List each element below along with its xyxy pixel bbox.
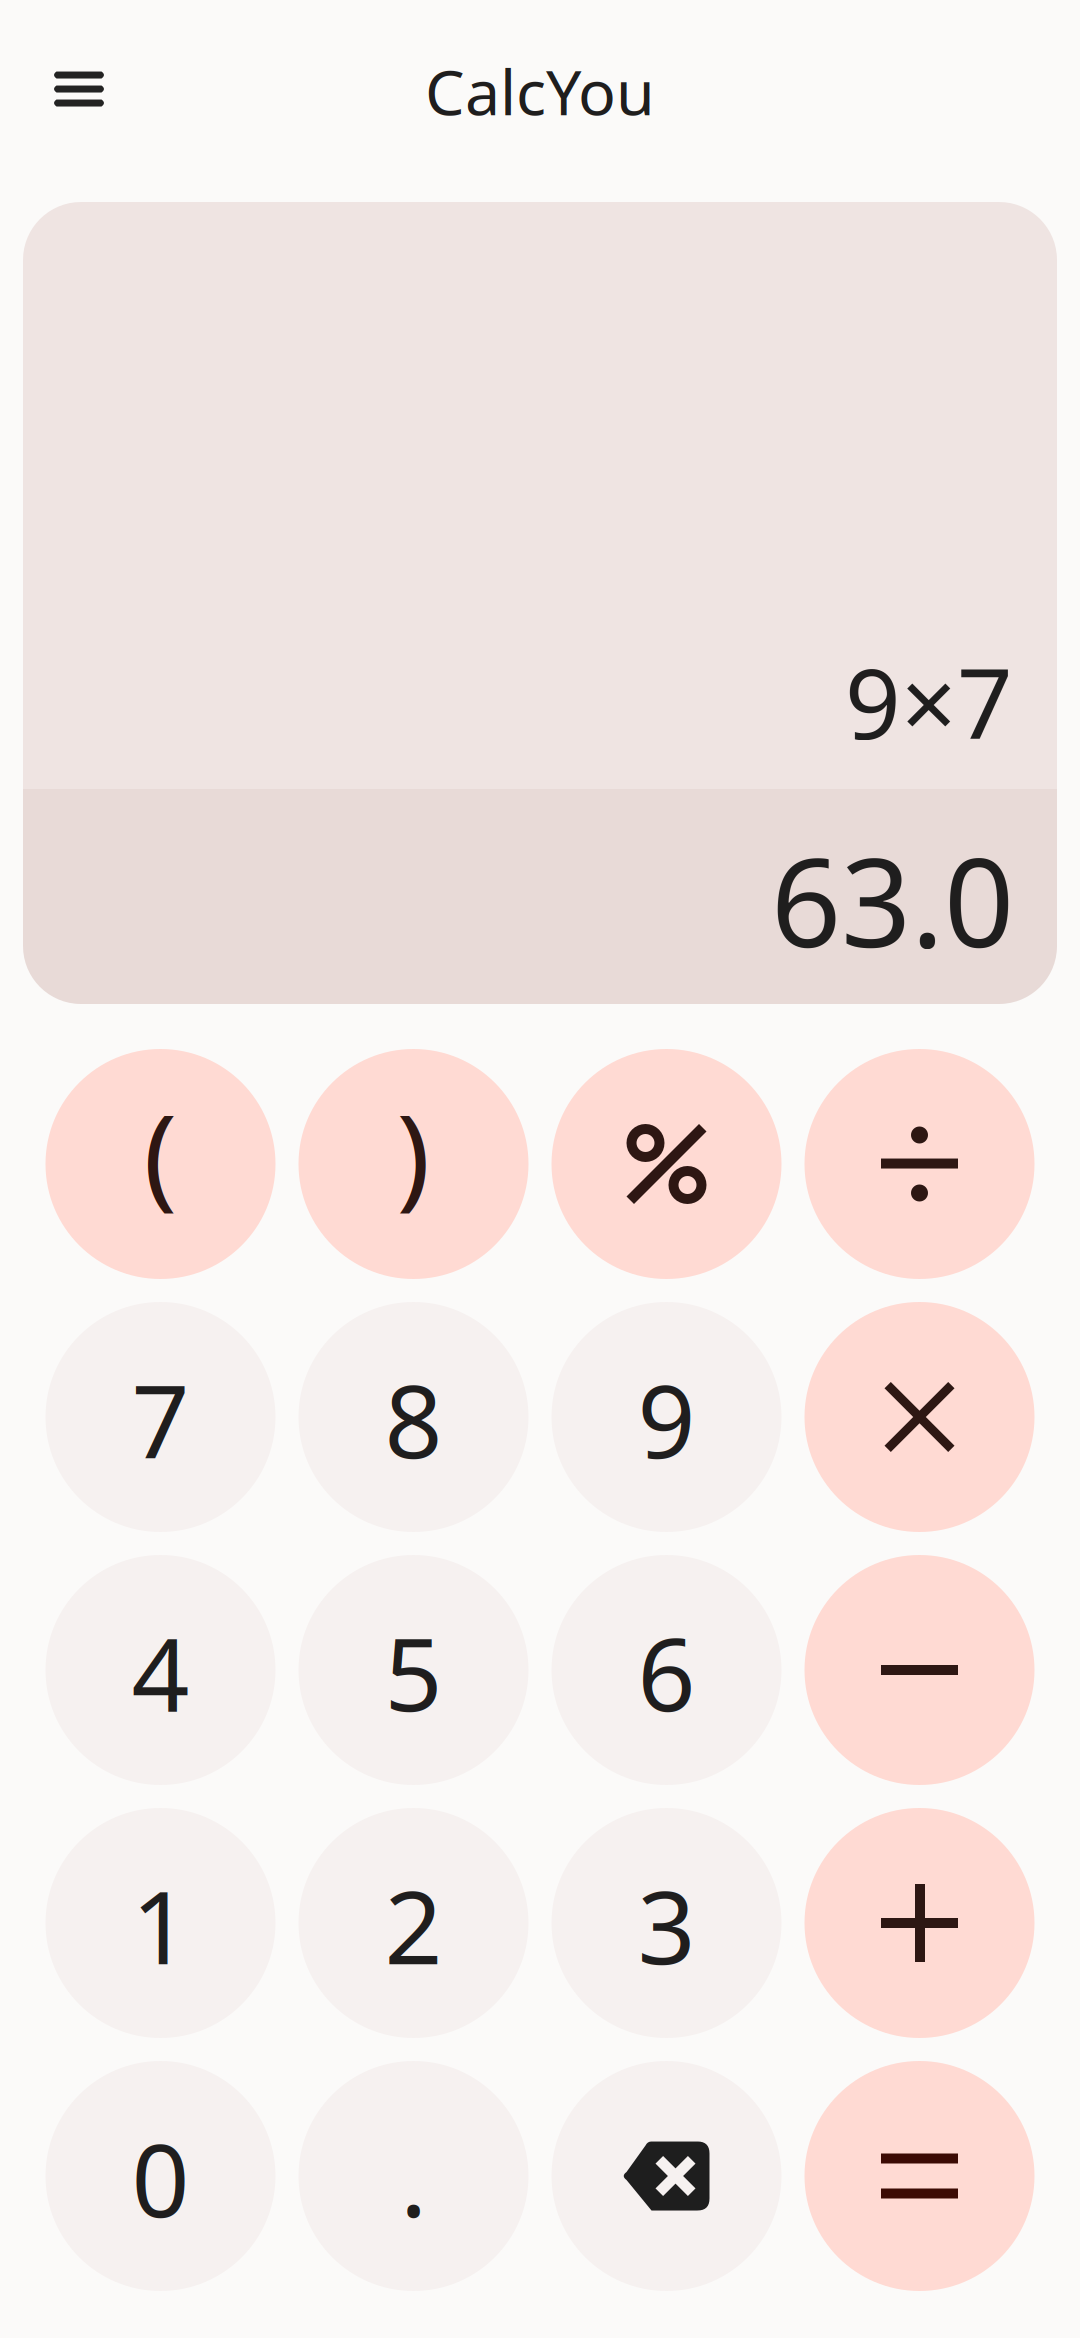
- button[interactable]: 5: [298, 1555, 528, 1785]
- staticText: 0: [131, 2111, 189, 2245]
- staticText: 8: [384, 1352, 442, 1486]
- button[interactable]: Close parenthesis: [298, 1049, 528, 1279]
- staticText: (: [143, 1078, 177, 1226]
- button[interactable]: Divide: [804, 1049, 1034, 1279]
- button[interactable]: 7: [45, 1302, 275, 1532]
- button[interactable]: Equals: [804, 2061, 1034, 2291]
- button[interactable]: 8: [298, 1302, 528, 1532]
- staticText: 63.0: [771, 818, 1014, 981]
- staticText: 5: [384, 1605, 442, 1739]
- staticText: CalcYou: [425, 49, 655, 133]
- button[interactable]: Open parenthesis: [45, 1049, 275, 1279]
- button[interactable]: 2: [298, 1808, 528, 2038]
- button[interactable]: Add: [804, 1808, 1034, 2038]
- staticText: 9: [637, 1352, 695, 1486]
- button[interactable]: 4: [45, 1555, 275, 1785]
- button[interactable]: 6: [551, 1555, 781, 1785]
- staticText: 7: [131, 1352, 189, 1486]
- button[interactable]: 1: [45, 1808, 275, 2038]
- button[interactable]: Backspace: [551, 2061, 781, 2291]
- button[interactable]: 0: [45, 2061, 275, 2291]
- staticText: 4: [131, 1605, 189, 1739]
- staticText: 6: [637, 1605, 695, 1739]
- staticText: 3: [637, 1858, 695, 1992]
- staticText: 9×7: [845, 637, 1013, 766]
- button[interactable]: Multiply: [804, 1302, 1034, 1532]
- button[interactable]: 9: [551, 1302, 781, 1532]
- button[interactable]: Subtract: [804, 1555, 1034, 1785]
- staticText: ): [396, 1078, 430, 1226]
- button[interactable]: .: [298, 2061, 528, 2291]
- button[interactable]: Percent: [551, 1049, 781, 1279]
- staticText: .: [400, 2111, 427, 2245]
- staticText: 1: [131, 1858, 189, 1992]
- button[interactable]: Menu: [39, 57, 119, 120]
- staticText: 2: [384, 1858, 442, 1992]
- button[interactable]: 3: [551, 1808, 781, 2038]
